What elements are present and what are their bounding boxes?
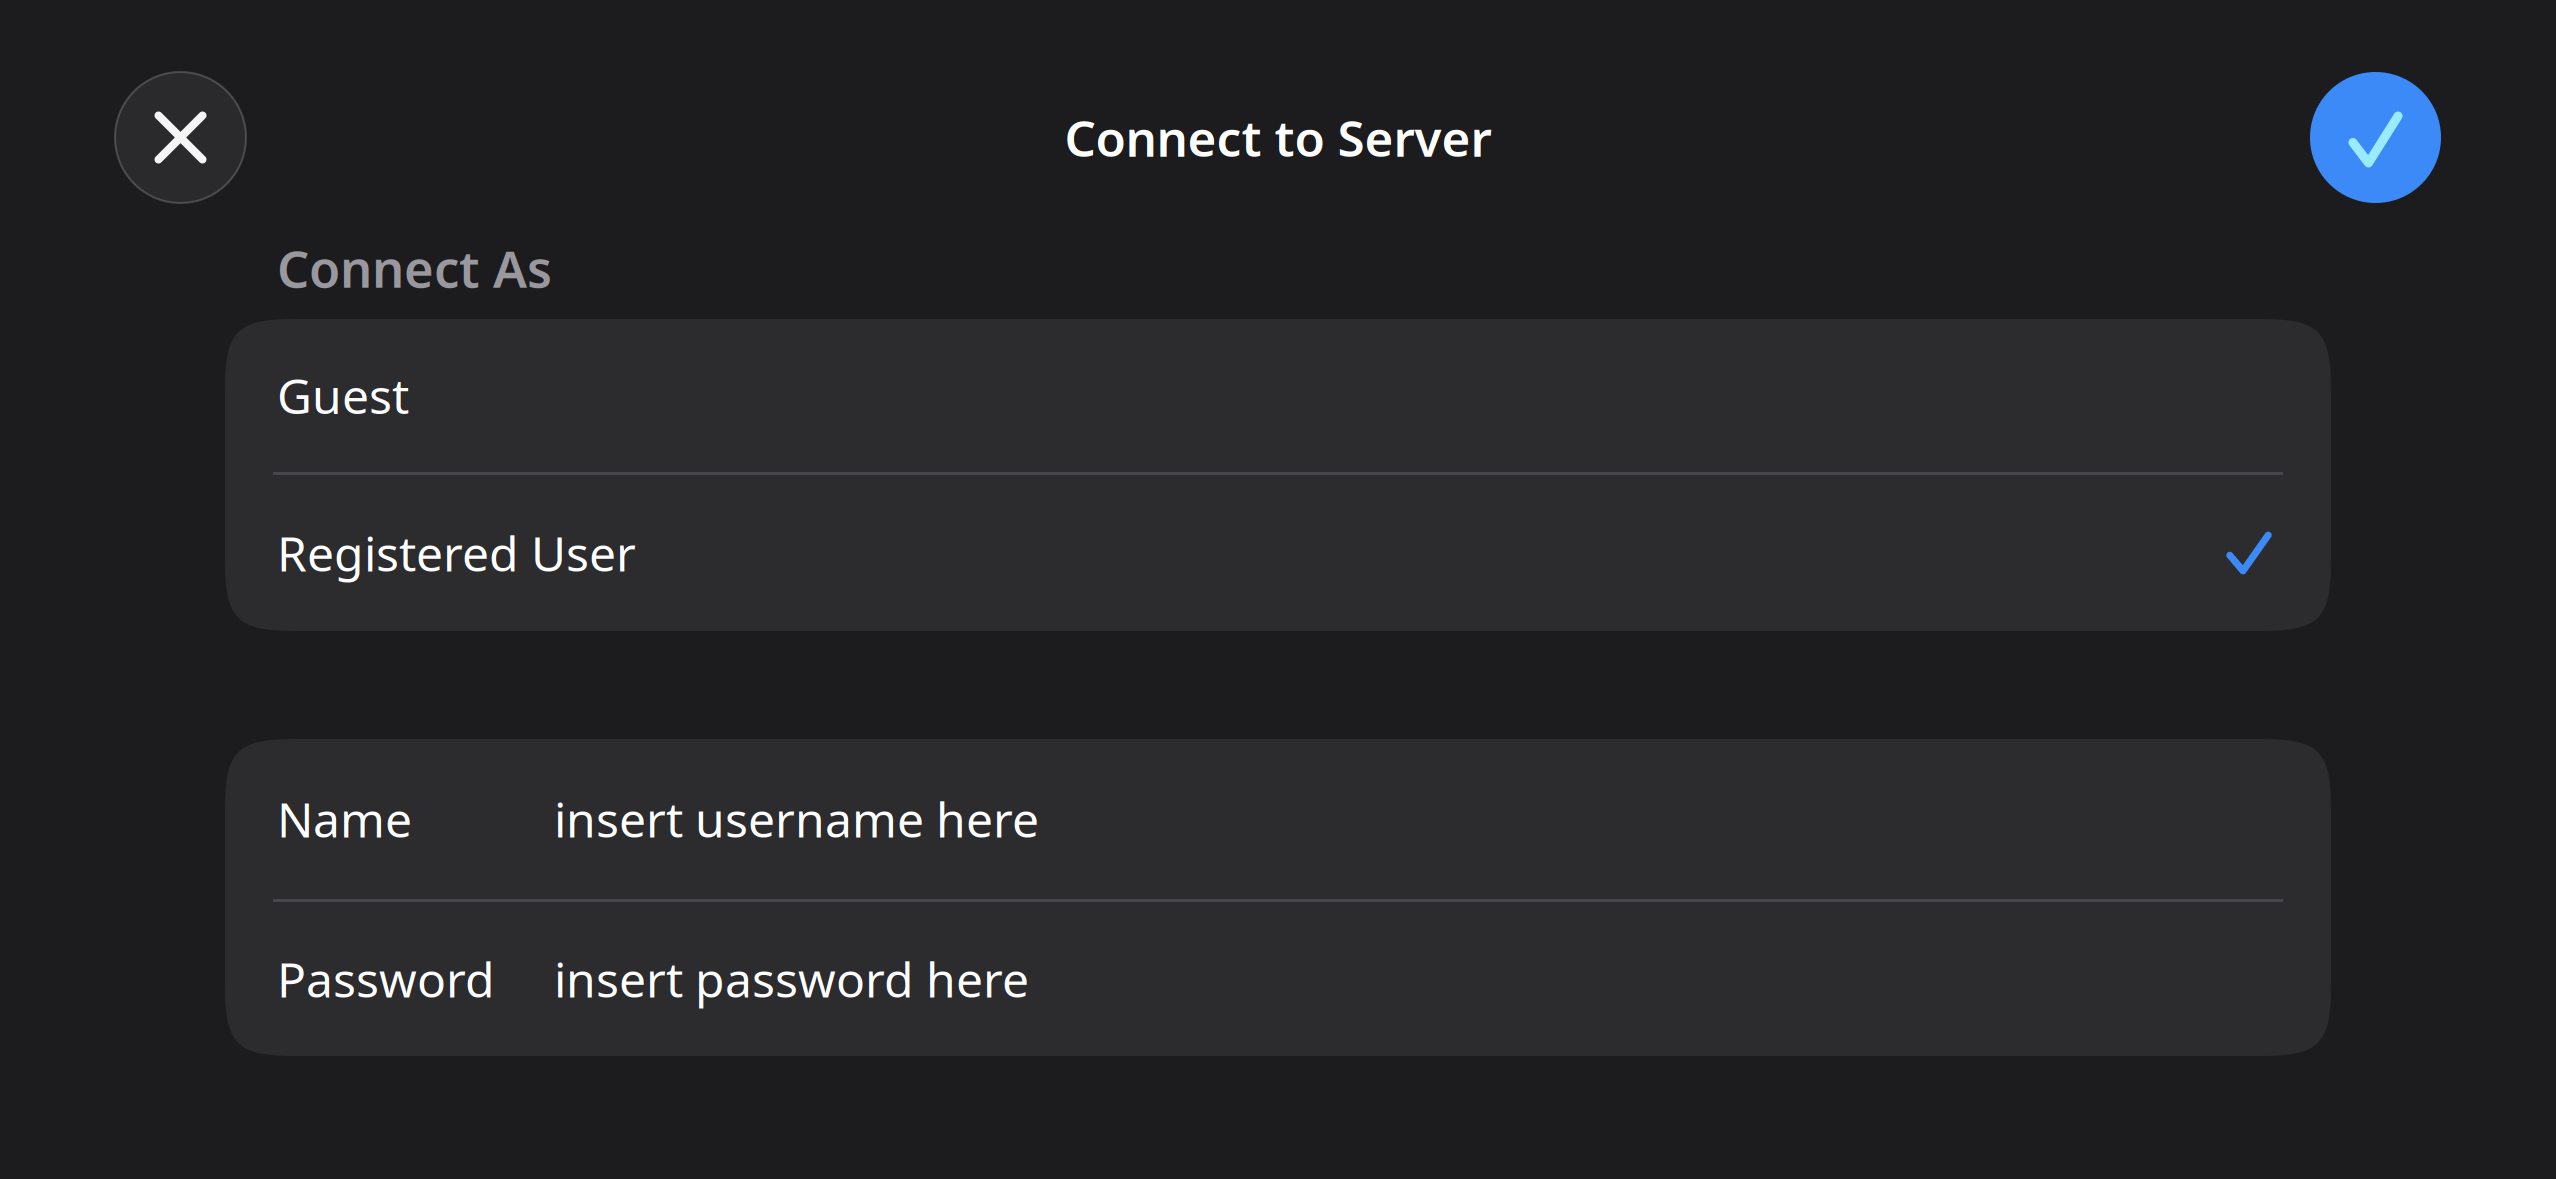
staticText: Guest [277, 364, 409, 427]
staticText: insert username here [554, 787, 1039, 851]
staticText: Name [277, 787, 412, 851]
button[interactable]: Close [115, 72, 246, 203]
button[interactable]: Password [225, 902, 2331, 1056]
staticText: Password [277, 947, 495, 1011]
button[interactable]: Registered User [225, 475, 2331, 631]
button[interactable]: Name [225, 739, 2331, 899]
staticText: Connect to Server [1064, 105, 1491, 170]
button[interactable]: Guest [225, 319, 2331, 472]
staticText: insert password here [554, 947, 1029, 1011]
staticText: Registered User [277, 521, 636, 585]
button[interactable]: Done [2310, 72, 2441, 203]
staticText: Connect As [277, 234, 552, 302]
